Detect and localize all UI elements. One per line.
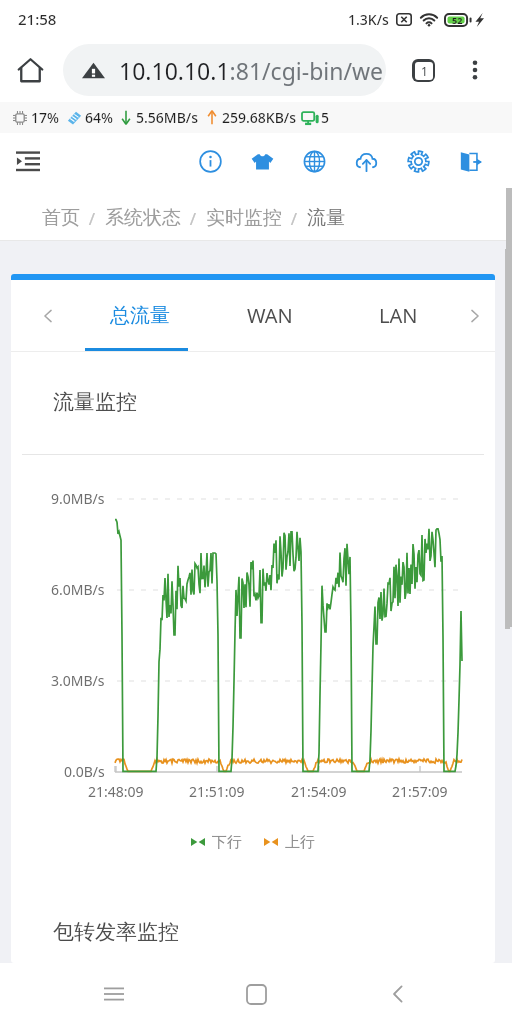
staticText: / — [181, 207, 206, 230]
button[interactable]: 流量 — [307, 206, 345, 230]
button[interactable]: WAN — [205, 280, 334, 351]
button[interactable]: 首页 — [42, 206, 80, 230]
staticText: 21:58 — [18, 9, 57, 29]
button[interactable]: 系统状态 — [105, 206, 181, 230]
button[interactable]: Back — [370, 966, 426, 1022]
staticText: 下行 — [212, 833, 242, 852]
button[interactable]: Tabs — [401, 48, 445, 92]
button[interactable]: Language — [288, 135, 340, 187]
button[interactable]: Next tab — [463, 280, 495, 351]
staticText: / — [80, 207, 105, 230]
button[interactable]: Info — [184, 135, 236, 187]
staticText: 5 — [321, 108, 330, 127]
staticText: 17% — [31, 108, 59, 127]
staticText: 21:54:09 — [291, 782, 347, 801]
button[interactable]: Recent apps — [86, 966, 142, 1022]
staticText: 1.3K/s — [348, 10, 389, 29]
staticText: 21:51:09 — [189, 782, 245, 801]
staticText: 6.0MB/s — [51, 580, 105, 599]
button[interactable]: Home — [8, 48, 52, 92]
button[interactable]: Settings — [392, 135, 444, 187]
staticText: 上行 — [285, 833, 315, 852]
staticText: 9.0MB/s — [51, 489, 105, 508]
staticText: 52 — [452, 14, 463, 26]
button[interactable]: Menu — [5, 138, 51, 184]
staticText: 21:48:09 — [88, 782, 144, 801]
staticText: 64% — [85, 108, 113, 127]
button[interactable]: More options — [453, 48, 497, 92]
button[interactable]: 实时监控 — [206, 206, 282, 230]
staticText: WAN — [247, 302, 293, 329]
staticText: 5.56MB/s — [136, 108, 199, 127]
staticText: 259.68KB/s — [222, 108, 297, 127]
button[interactable]: Upload — [340, 135, 392, 187]
staticText: 3.0MB/s — [51, 671, 105, 690]
button[interactable]: 总流量 — [75, 280, 205, 351]
button[interactable]: Previous tab — [11, 280, 75, 351]
staticText: / — [282, 207, 307, 230]
button[interactable]: Home — [228, 966, 284, 1022]
button[interactable]: Logout — [444, 135, 496, 187]
button[interactable]: LAN — [334, 280, 463, 351]
staticText: 包转发率监控 — [53, 919, 179, 945]
staticText: 10.10.10.1:81/cgi-bin/we — [119, 55, 384, 86]
staticText: 总流量 — [110, 303, 170, 328]
staticText: 1 — [421, 63, 428, 79]
staticText: LAN — [379, 302, 418, 329]
staticText: 21:57:09 — [392, 782, 448, 801]
staticText: 0.0B/s — [64, 762, 105, 781]
staticText: 流量监控 — [53, 389, 137, 415]
button[interactable]: 10.10.10.1:81/cgi-bin/we — [63, 44, 386, 96]
button[interactable]: Theme — [236, 135, 288, 187]
